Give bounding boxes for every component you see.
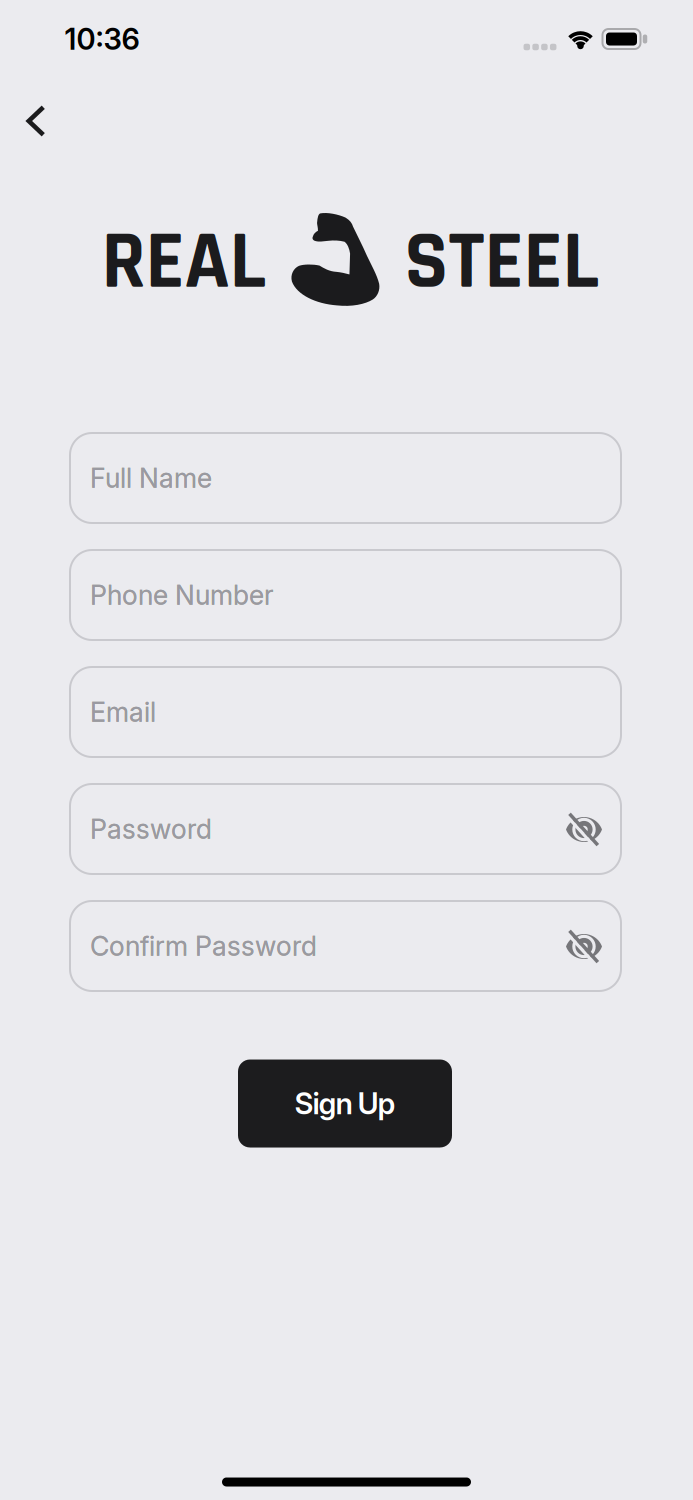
secureTextField[interactable]: Confirm Password xyxy=(90,930,562,962)
staticText: REAL xyxy=(101,211,266,315)
textField[interactable]: Email xyxy=(90,696,606,728)
button[interactable]: Show password xyxy=(562,807,606,851)
staticText: Confirm Password xyxy=(90,930,317,962)
staticText: Phone Number xyxy=(90,579,274,611)
staticText: Password xyxy=(90,813,212,845)
staticText: STEEL xyxy=(404,211,599,315)
staticText: Email xyxy=(90,696,156,728)
staticText: Email xyxy=(90,696,156,728)
staticText: Phone Number xyxy=(90,579,274,611)
staticText: Confirm Password xyxy=(90,930,317,962)
textField[interactable]: Phone Number xyxy=(90,579,606,611)
staticText: Full Name xyxy=(90,462,212,494)
textField[interactable]: Full Name xyxy=(90,462,606,494)
button[interactable]: Show password xyxy=(562,924,606,968)
staticText: 10:36 xyxy=(64,22,139,56)
staticText: Password xyxy=(90,813,212,845)
button[interactable]: Back xyxy=(14,98,58,144)
staticText: Sign Up xyxy=(294,1086,395,1121)
staticText: Full Name xyxy=(90,462,212,494)
button[interactable]: Sign Up xyxy=(238,1059,452,1147)
secureTextField[interactable]: Password xyxy=(90,813,562,845)
